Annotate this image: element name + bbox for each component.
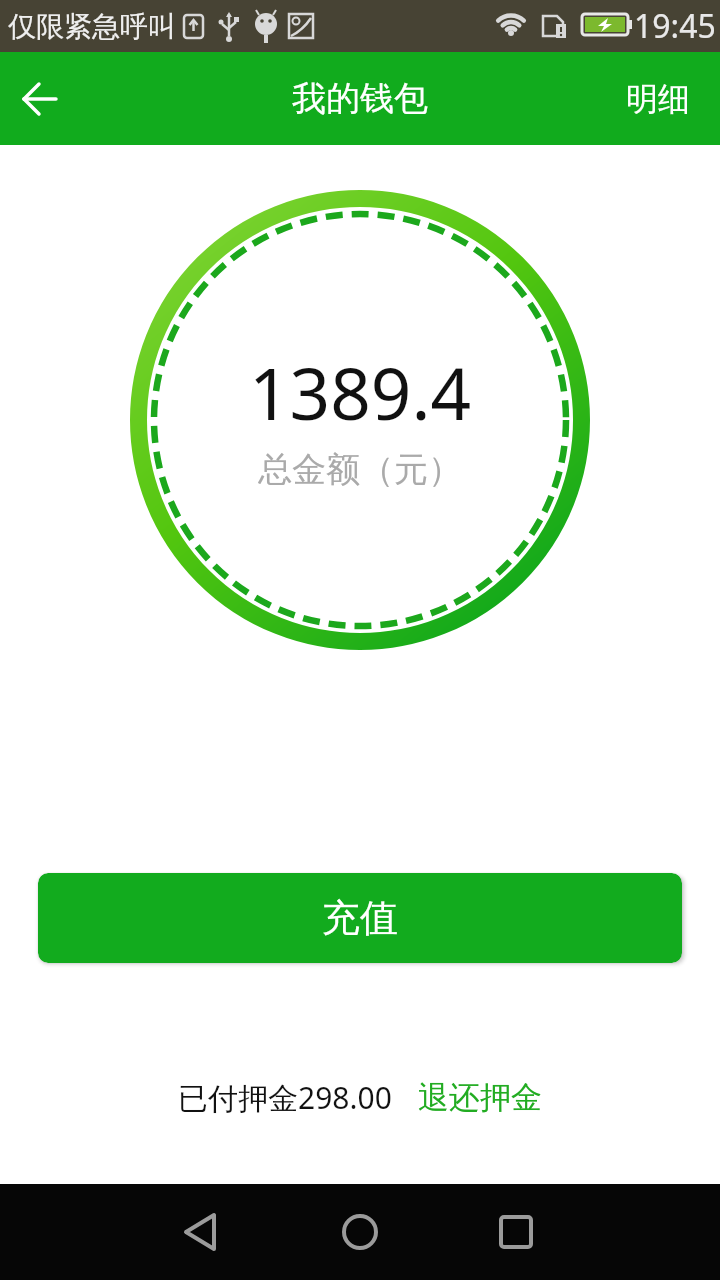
button[interactable]: 退还押金 xyxy=(418,1078,542,1117)
staticText: 仅限紧急呼叫 xyxy=(8,9,176,44)
button[interactable] xyxy=(18,77,62,121)
staticText: 明细 xyxy=(626,79,690,119)
staticText: 19:45 xyxy=(634,4,716,48)
button[interactable]: 明细 xyxy=(626,79,690,119)
staticText: 充值 xyxy=(322,894,398,942)
staticText: 已付押金298.00 xyxy=(178,1077,392,1118)
button[interactable] xyxy=(240,1184,480,1280)
button[interactable] xyxy=(0,1184,240,1280)
button[interactable] xyxy=(480,1184,720,1280)
button[interactable]: 充值 xyxy=(38,873,682,963)
staticText: 1389.4 xyxy=(249,344,472,441)
staticText: 总金额（元） xyxy=(258,448,462,491)
staticText: 我的钱包 xyxy=(292,77,428,120)
